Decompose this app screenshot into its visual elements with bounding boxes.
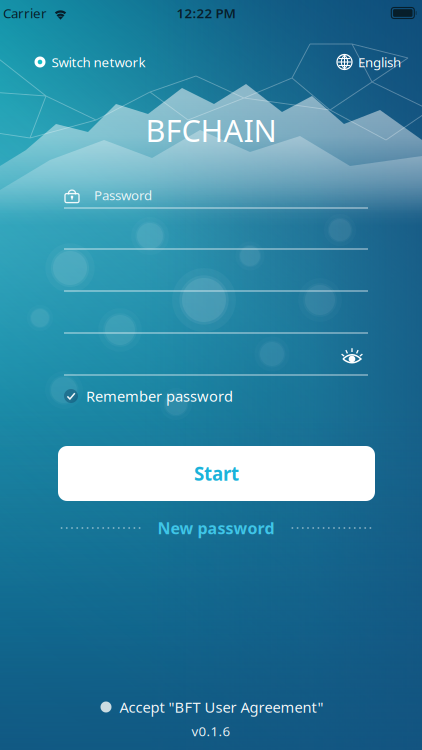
- staticText: Accept "BFT User Agreement": [119, 697, 323, 717]
- staticText: 12:22 PM: [176, 4, 235, 22]
- button[interactable]: Show password: [337, 341, 367, 371]
- staticText: BFCHAIN: [145, 110, 276, 150]
- staticText: Switch network: [51, 53, 145, 71]
- staticText: New password: [157, 517, 274, 539]
- staticText: Start: [194, 461, 239, 486]
- staticText: Password: [94, 186, 152, 204]
- button[interactable]: English: [331, 47, 407, 77]
- button[interactable]: Remember password: [64, 384, 368, 408]
- button[interactable]: Switch network: [28, 47, 151, 77]
- staticText: v0.1.6: [191, 722, 230, 740]
- staticText: Carrier: [3, 4, 47, 22]
- staticText: English: [358, 53, 401, 71]
- button[interactable]: Accept "BFT User Agreement": [100, 693, 323, 721]
- button[interactable]: Start: [58, 446, 375, 501]
- staticText: Remember password: [86, 386, 233, 406]
- button[interactable]: New password: [61, 511, 371, 545]
